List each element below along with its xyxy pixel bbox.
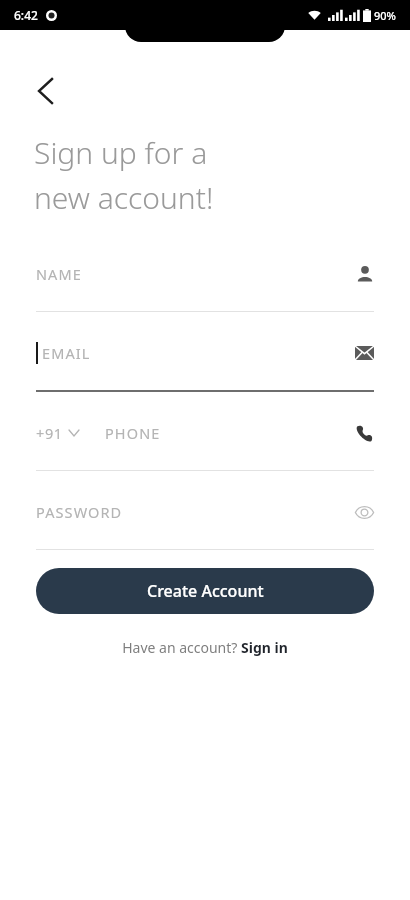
button[interactable]: Phone [36, 418, 374, 471]
button[interactable]: Show password [36, 497, 374, 550]
staticText: NAME [36, 264, 82, 284]
staticText: Create Account [147, 580, 264, 602]
button[interactable]: Create Account [36, 568, 374, 614]
staticText: Sign up for a new account! [34, 132, 214, 217]
button[interactable]: Have an account? Sign in [110, 634, 300, 661]
staticText: 6:42 [14, 7, 38, 23]
staticText: EMAIL [42, 343, 91, 363]
staticText: 90% [374, 8, 396, 23]
staticText: +91 [36, 423, 63, 443]
staticText: Have an account? Sign in [122, 638, 288, 657]
staticText: PHONE [105, 423, 161, 443]
button[interactable]: Name [36, 259, 374, 312]
staticText: PASSWORD [36, 502, 123, 522]
button[interactable]: Back [22, 68, 68, 114]
button[interactable]: Email [36, 338, 374, 392]
